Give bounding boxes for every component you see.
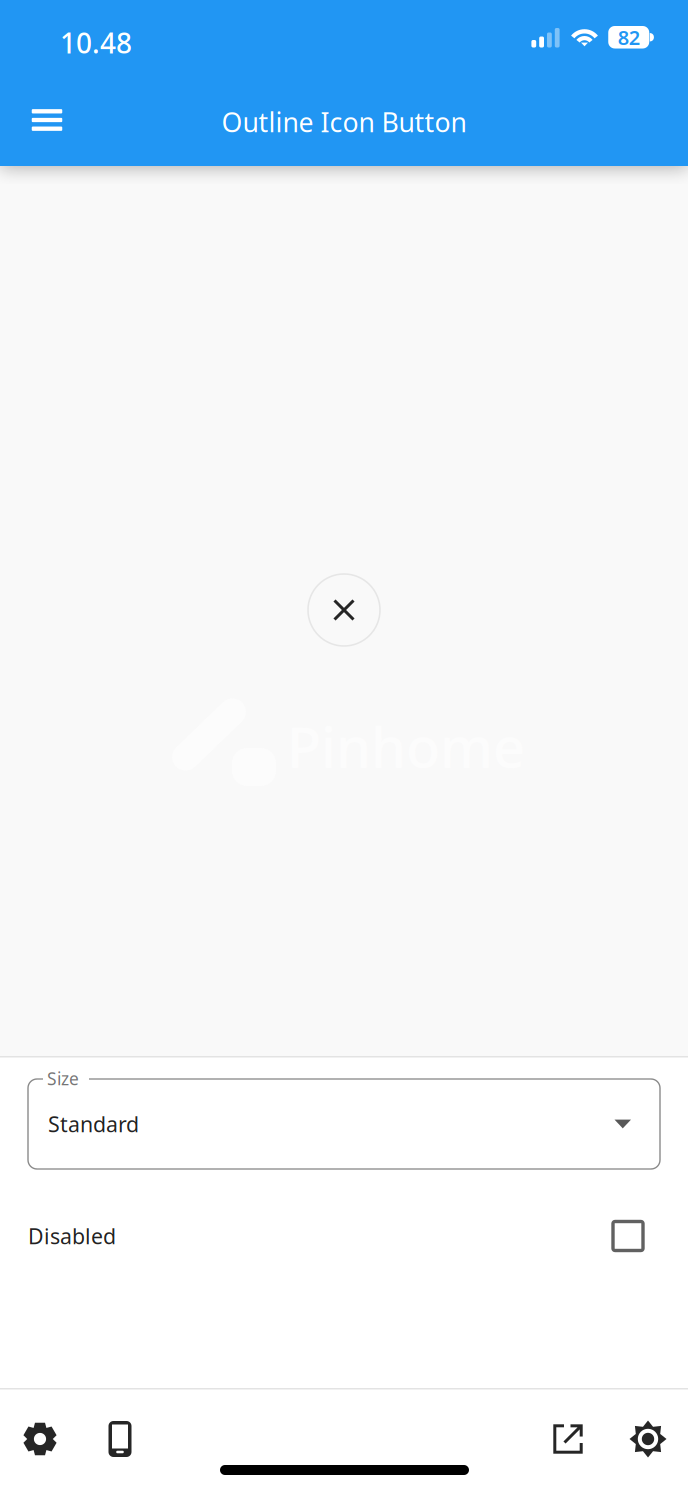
staticText: 10.48 bbox=[60, 24, 132, 61]
button[interactable]: Brightness bbox=[616, 1407, 680, 1471]
staticText: 82 bbox=[618, 24, 640, 51]
button[interactable]: Open in new window bbox=[536, 1407, 600, 1471]
button[interactable]: Size, Standard bbox=[28, 1079, 660, 1169]
staticText: Size bbox=[47, 1067, 79, 1090]
button[interactable]: Menu bbox=[17, 90, 77, 150]
staticText: Disabled bbox=[28, 1222, 116, 1250]
button[interactable]: Settings bbox=[8, 1407, 72, 1471]
staticText: Standard bbox=[48, 1110, 139, 1138]
button[interactable]: Close bbox=[308, 574, 380, 646]
staticText: Outline Icon Button bbox=[221, 104, 466, 140]
button[interactable]: Disabled bbox=[28, 1208, 660, 1264]
button[interactable]: Device preview bbox=[88, 1407, 152, 1471]
